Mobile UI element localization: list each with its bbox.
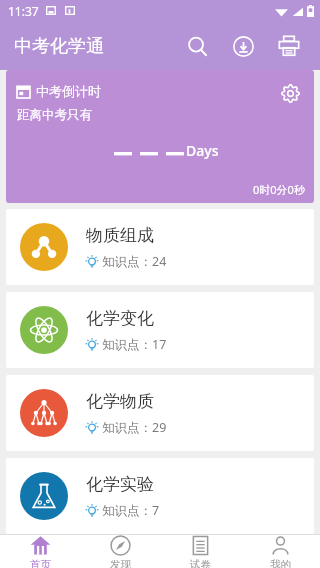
staticText: 发现 <box>110 558 131 568</box>
staticText: 知识点：29 <box>102 419 167 436</box>
staticText: 化学物质 <box>86 391 154 412</box>
staticText: 0时0分0秒 <box>253 182 305 197</box>
staticText: 首页 <box>30 558 51 568</box>
button[interactable]: 我的 <box>240 535 320 568</box>
button[interactable]: 首页 <box>0 535 80 568</box>
button[interactable]: Search <box>174 23 220 69</box>
staticText: 知识点：7 <box>102 502 160 519</box>
button[interactable]: 化学物质 <box>6 375 314 451</box>
button[interactable]: Download <box>220 23 266 69</box>
staticText: 化学实验 <box>86 474 154 495</box>
button[interactable]: 化学变化 <box>6 292 314 368</box>
staticText: 知识点：17 <box>102 336 167 353</box>
staticText: 试卷 <box>190 558 211 568</box>
button[interactable]: 试卷 <box>160 535 240 568</box>
button[interactable]: Settings <box>274 77 306 109</box>
button[interactable]: 物质组成 <box>6 209 314 285</box>
button[interactable]: 发现 <box>80 535 160 568</box>
staticText: 我的 <box>270 558 291 568</box>
staticText: 知识点：24 <box>102 253 167 270</box>
staticText: 物质组成 <box>86 225 154 246</box>
staticText: 中考化学通 <box>14 35 104 58</box>
staticText: 11:37 <box>8 3 39 19</box>
staticText: 化学变化 <box>86 308 154 329</box>
staticText: 距离中考只有 <box>17 107 92 123</box>
staticText: 中考倒计时 <box>36 83 101 99</box>
staticText: Days <box>186 141 219 160</box>
button[interactable]: Print <box>266 23 312 69</box>
button[interactable]: 化学实验 <box>6 458 314 534</box>
button[interactable]: 中考倒计时 <box>6 70 314 203</box>
